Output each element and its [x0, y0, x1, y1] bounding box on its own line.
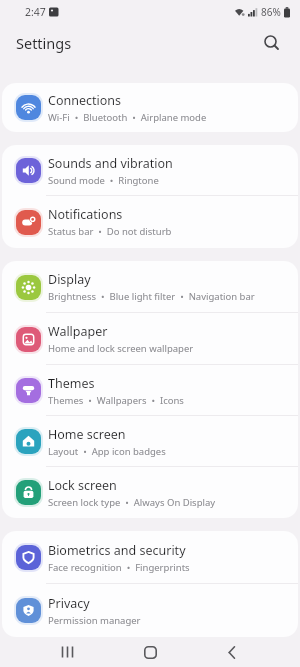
staticText: Brightness • Blue light filter • Navigat…: [48, 290, 255, 303]
button[interactable]: [38, 637, 98, 667]
button[interactable]: [258, 29, 286, 57]
button[interactable]: Connections: [2, 83, 298, 132]
button[interactable]: Display: [2, 261, 298, 313]
staticText: Notifications: [48, 206, 123, 223]
button[interactable]: Notifications: [2, 196, 298, 248]
staticText: Permission manager: [48, 614, 141, 627]
staticText: Sound mode • Ringtone: [48, 174, 159, 187]
staticText: Layout • App icon badges: [48, 445, 166, 458]
staticText: Home screen: [48, 426, 126, 443]
staticText: Themes: [48, 375, 95, 392]
staticText: Themes • Wallpapers • Icons: [48, 394, 184, 407]
staticText: 86%: [261, 5, 281, 19]
staticText: Lock screen: [48, 477, 117, 494]
button[interactable]: Lock screen: [2, 467, 298, 518]
button[interactable]: Home screen: [2, 416, 298, 467]
button[interactable]: Themes: [2, 365, 298, 416]
staticText: Screen lock type • Always On Display: [48, 496, 216, 509]
staticText: Face recognition • Fingerprints: [48, 561, 190, 574]
button[interactable]: Sounds and vibration: [2, 145, 298, 196]
button[interactable]: Biometrics and security: [2, 531, 298, 584]
button[interactable]: [120, 637, 180, 667]
staticText: 2:47: [25, 5, 46, 19]
button[interactable]: Privacy: [2, 584, 298, 637]
staticText: Home and lock screen wallpaper: [48, 342, 194, 355]
staticText: Wi-Fi • Bluetooth • Airplane mode: [48, 111, 207, 124]
staticText: Settings: [16, 33, 72, 53]
staticText: Connections: [48, 92, 121, 109]
button[interactable]: Wallpaper: [2, 313, 298, 365]
staticText: Display: [48, 271, 91, 288]
staticText: Sounds and vibration: [48, 155, 173, 172]
staticText: Privacy: [48, 595, 90, 612]
staticText: Wallpaper: [48, 323, 108, 340]
staticText: Biometrics and security: [48, 542, 186, 559]
staticText: Status bar • Do not disturb: [48, 225, 172, 238]
button[interactable]: [202, 637, 262, 667]
